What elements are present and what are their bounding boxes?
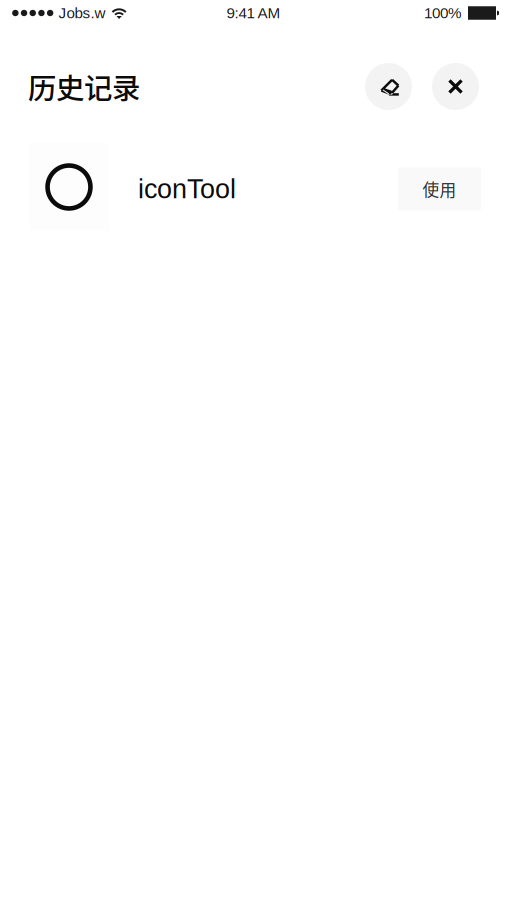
button[interactable]: iconTool bbox=[0, 143, 507, 231]
staticText: 9:41 AM bbox=[226, 4, 280, 21]
staticText: iconTool bbox=[138, 174, 236, 204]
staticText: 使用 bbox=[422, 177, 456, 201]
staticText: 100% bbox=[424, 4, 462, 21]
button[interactable]: 清除记录 bbox=[365, 63, 412, 110]
staticText: 历史记录 bbox=[28, 66, 140, 107]
button[interactable]: 关闭 bbox=[432, 63, 479, 110]
button[interactable]: 使用 bbox=[398, 167, 481, 210]
staticText: Jobs.w bbox=[58, 4, 105, 21]
